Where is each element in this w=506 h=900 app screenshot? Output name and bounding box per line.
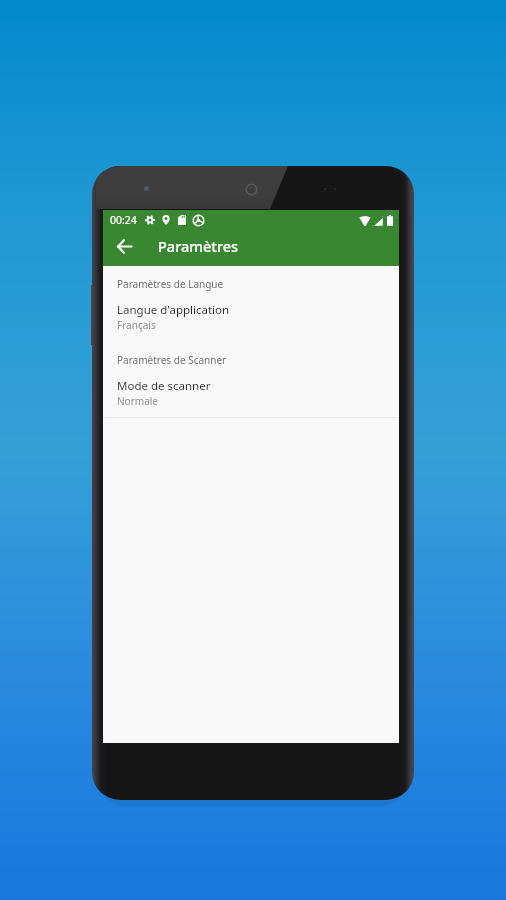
button[interactable]: Langue d'application (103, 302, 399, 332)
staticText: Paramètres (158, 236, 239, 256)
staticText: Normale (117, 394, 158, 408)
staticText: Français (117, 318, 156, 332)
staticText: 00:24 (110, 213, 137, 227)
button[interactable]: Mode de scanner (103, 378, 399, 408)
button[interactable]: Back (103, 230, 147, 266)
staticText: Langue d'application (117, 302, 230, 318)
staticText: Mode de scanner (117, 378, 211, 394)
staticText: Paramètres de Langue (117, 277, 224, 291)
staticText: Paramètres de Scanner (117, 353, 227, 367)
